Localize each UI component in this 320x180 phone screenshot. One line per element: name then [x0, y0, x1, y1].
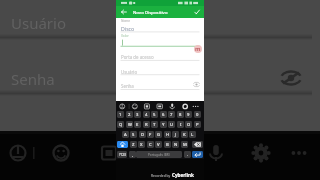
- button[interactable]: H: [164, 131, 171, 138]
- staticText: 4: [145, 112, 148, 118]
- staticText: G: [157, 132, 161, 138]
- staticText: N: [174, 142, 178, 148]
- button[interactable]: T: [151, 121, 158, 128]
- button[interactable]: D: [139, 131, 146, 138]
- staticText: Senha: [11, 69, 55, 89]
- button[interactable]: 1: [117, 111, 124, 118]
- staticText: Nome: [121, 19, 131, 23]
- button[interactable]: 7: [168, 111, 175, 118]
- button[interactable]: 4: [143, 111, 150, 118]
- staticText: B: [166, 142, 169, 148]
- staticText: 2: [128, 112, 131, 118]
- button[interactable]: Account suggestion: [194, 45, 202, 53]
- staticText: O: [187, 122, 191, 128]
- staticText: M: [183, 142, 187, 148]
- staticText: D: [141, 132, 145, 138]
- staticText: 3: [136, 112, 139, 118]
- button[interactable]: 2: [126, 111, 133, 118]
- button[interactable]: .: [184, 151, 191, 158]
- staticText: E: [136, 122, 139, 128]
- button[interactable]: S: [130, 131, 137, 138]
- button[interactable]: M: [181, 141, 188, 148]
- staticText: Z: [132, 142, 135, 148]
- staticText: Valor: [121, 34, 129, 38]
- staticText: Disco: [121, 25, 135, 32]
- button[interactable]: Y: [160, 121, 167, 128]
- staticText: Y: [162, 122, 165, 128]
- button[interactable]: 9: [185, 111, 192, 118]
- staticText: 0: [196, 112, 199, 118]
- button[interactable]: Enter: [192, 151, 203, 158]
- staticText: P: [196, 122, 199, 128]
- button[interactable]: X: [138, 141, 145, 148]
- button[interactable]: G: [155, 131, 162, 138]
- button[interactable]: I: [177, 121, 184, 128]
- button[interactable]: L: [189, 131, 196, 138]
- button[interactable]: O: [185, 121, 192, 128]
- button[interactable]: V: [155, 141, 162, 148]
- staticText: Q: [119, 122, 123, 128]
- staticText: 9: [187, 112, 190, 118]
- button[interactable]: ,: [129, 151, 136, 158]
- staticText: ?123: [119, 153, 126, 157]
- button[interactable]: Space: [136, 151, 182, 158]
- button[interactable]: W: [126, 121, 133, 128]
- button[interactable]: K: [181, 131, 188, 138]
- button[interactable]: 6: [160, 111, 167, 118]
- button[interactable]: C: [147, 141, 154, 148]
- button[interactable]: Save: [191, 6, 203, 18]
- staticText: 8: [179, 112, 182, 118]
- button[interactable]: U: [168, 121, 175, 128]
- staticText: Português (BR): [148, 153, 170, 157]
- staticText: 7: [170, 112, 173, 118]
- staticText: U: [170, 122, 174, 128]
- staticText: X: [140, 142, 143, 148]
- button[interactable]: 5: [151, 111, 158, 118]
- staticText: Novo Dispositivo: [133, 9, 168, 15]
- button[interactable]: Z: [130, 141, 137, 148]
- staticText: ,: [132, 152, 134, 158]
- staticText: F: [149, 132, 152, 138]
- button[interactable]: Shift: [117, 141, 128, 148]
- staticText: Senha: [121, 83, 134, 89]
- staticText: Usuário: [11, 13, 66, 33]
- staticText: Recorded by: [151, 173, 172, 177]
- staticText: W: [128, 122, 132, 128]
- button[interactable]: E: [134, 121, 141, 128]
- button[interactable]: 8: [177, 111, 184, 118]
- button[interactable]: J: [172, 131, 179, 138]
- staticText: A: [124, 132, 127, 138]
- button[interactable]: 0: [194, 111, 201, 118]
- staticText: 5: [153, 112, 156, 118]
- staticText: J: [175, 132, 177, 138]
- staticText: S: [132, 132, 135, 138]
- button[interactable]: A: [122, 131, 129, 138]
- button[interactable]: ?123: [117, 151, 127, 158]
- staticText: m: [195, 45, 201, 53]
- button[interactable]: Show password: [192, 80, 201, 89]
- staticText: 1: [119, 112, 122, 118]
- staticText: V: [157, 142, 160, 148]
- staticText: .: [187, 152, 189, 158]
- button[interactable]: Q: [117, 121, 124, 128]
- button[interactable]: B: [164, 141, 171, 148]
- button[interactable]: N: [172, 141, 179, 148]
- button[interactable]: Back: [118, 6, 130, 18]
- staticText: Cyberlink: [172, 172, 194, 178]
- staticText: L: [191, 132, 194, 138]
- button[interactable]: 3: [134, 111, 141, 118]
- button[interactable]: Backspace: [192, 141, 203, 148]
- button[interactable]: F: [147, 131, 154, 138]
- staticText: I: [180, 122, 182, 128]
- staticText: R: [145, 122, 148, 128]
- staticText: H: [166, 132, 170, 138]
- staticText: C: [149, 142, 152, 148]
- button[interactable]: P: [194, 121, 201, 128]
- staticText: K: [183, 132, 186, 138]
- staticText: Usuário: [121, 69, 138, 75]
- staticText: 6: [162, 112, 165, 118]
- staticText: T: [153, 122, 156, 128]
- staticText: Porta de acesso: [121, 54, 154, 60]
- button[interactable]: R: [143, 121, 150, 128]
